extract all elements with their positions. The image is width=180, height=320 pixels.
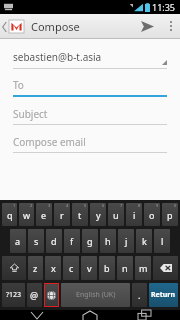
staticText: @ bbox=[30, 289, 39, 301]
staticText: English (UK) bbox=[76, 290, 116, 300]
button[interactable]: Shift bbox=[2, 256, 26, 280]
button[interactable]: Navigate up bbox=[0, 20, 26, 33]
staticText: Compose email bbox=[13, 135, 86, 149]
button[interactable]: 4 bbox=[54, 203, 70, 226]
staticText: 11:35 bbox=[152, 1, 176, 13]
button[interactable]: Return bbox=[149, 283, 178, 307]
button[interactable]: m bbox=[135, 256, 151, 280]
staticText: 5 bbox=[84, 203, 87, 208]
staticText: sebastien@b-t.asia bbox=[13, 50, 102, 64]
staticText: 6 bbox=[102, 203, 105, 208]
button[interactable]: b bbox=[99, 256, 115, 280]
staticText: a bbox=[15, 235, 21, 247]
staticText: 1 bbox=[13, 203, 16, 208]
staticText: e bbox=[41, 209, 47, 221]
staticText: c bbox=[69, 262, 74, 274]
staticText: 8 bbox=[138, 203, 141, 208]
button[interactable]: g bbox=[82, 229, 98, 253]
button[interactable]: sebastien@b-t.asia bbox=[13, 46, 167, 68]
staticText: f bbox=[70, 235, 74, 247]
staticText: n bbox=[122, 262, 128, 274]
button[interactable]: Send bbox=[132, 14, 162, 38]
button[interactable]: n bbox=[117, 256, 133, 280]
button[interactable]: Home bbox=[73, 310, 107, 320]
staticText: v bbox=[87, 262, 92, 274]
staticText: Return bbox=[151, 290, 176, 300]
button[interactable]: 0 bbox=[162, 203, 178, 226]
button[interactable]: ?123 bbox=[2, 283, 25, 307]
button[interactable]: 7 bbox=[108, 203, 124, 226]
staticText: ?123 bbox=[6, 290, 22, 300]
staticText: m bbox=[139, 262, 148, 274]
button[interactable]: Subject bbox=[13, 104, 167, 124]
button[interactable]: English (UK) bbox=[61, 283, 130, 307]
staticText: l bbox=[161, 235, 164, 247]
staticText: t bbox=[78, 209, 82, 221]
button[interactable]: Hide keyboard bbox=[20, 310, 54, 320]
staticText: z bbox=[33, 262, 38, 274]
button[interactable]: Delete bbox=[153, 256, 178, 280]
button[interactable]: s bbox=[28, 229, 44, 253]
button[interactable]: z bbox=[28, 256, 43, 280]
button[interactable]: l bbox=[154, 229, 170, 253]
staticText: 9 bbox=[156, 203, 159, 208]
button[interactable]: Recent apps bbox=[127, 310, 161, 320]
staticText: 2 bbox=[30, 203, 33, 208]
staticText: 7 bbox=[120, 203, 123, 208]
button[interactable]: @ bbox=[27, 283, 42, 307]
staticText: d bbox=[51, 235, 57, 247]
staticText: j bbox=[125, 235, 128, 247]
staticText: 4 bbox=[66, 203, 69, 208]
staticText: y bbox=[96, 209, 101, 221]
button[interactable]: v bbox=[81, 256, 97, 280]
staticText: i bbox=[133, 209, 136, 221]
button[interactable]: 2 bbox=[19, 203, 34, 226]
button[interactable]: j bbox=[118, 229, 134, 253]
staticText: p bbox=[167, 209, 173, 221]
staticText: 0 bbox=[174, 203, 177, 208]
button[interactable]: To bbox=[13, 75, 167, 95]
staticText: x bbox=[51, 262, 56, 274]
staticText: b bbox=[104, 262, 110, 274]
staticText: To bbox=[13, 78, 24, 92]
staticText: . bbox=[138, 289, 141, 301]
button[interactable]: c bbox=[63, 256, 79, 280]
staticText: k bbox=[142, 235, 147, 247]
button[interactable]: Change input method bbox=[45, 284, 58, 306]
staticText: h bbox=[105, 235, 111, 247]
button[interactable]: k bbox=[136, 229, 152, 253]
button[interactable]: f bbox=[64, 229, 80, 253]
staticText: g bbox=[87, 235, 93, 247]
button[interactable]: 8 bbox=[126, 203, 142, 226]
button[interactable]: h bbox=[100, 229, 116, 253]
staticText: w bbox=[23, 209, 31, 221]
button[interactable]: 5 bbox=[72, 203, 88, 226]
button[interactable]: . bbox=[132, 283, 147, 307]
staticText: q bbox=[7, 209, 13, 221]
button[interactable]: 9 bbox=[144, 203, 160, 226]
staticText: s bbox=[34, 235, 39, 247]
staticText: r bbox=[60, 209, 64, 221]
staticText: Subject bbox=[13, 107, 48, 121]
button[interactable]: 1 bbox=[2, 203, 17, 226]
staticText: Compose bbox=[31, 19, 80, 34]
button[interactable]: Compose email bbox=[13, 132, 167, 152]
button[interactable]: 3 bbox=[36, 203, 52, 226]
staticText: u bbox=[113, 209, 119, 221]
button[interactable]: x bbox=[45, 256, 61, 280]
button[interactable]: More options bbox=[162, 14, 180, 38]
staticText: o bbox=[149, 209, 155, 221]
button[interactable]: a bbox=[10, 229, 26, 253]
button[interactable]: 6 bbox=[90, 203, 106, 226]
button[interactable]: d bbox=[46, 229, 62, 253]
staticText: 3 bbox=[48, 203, 51, 208]
